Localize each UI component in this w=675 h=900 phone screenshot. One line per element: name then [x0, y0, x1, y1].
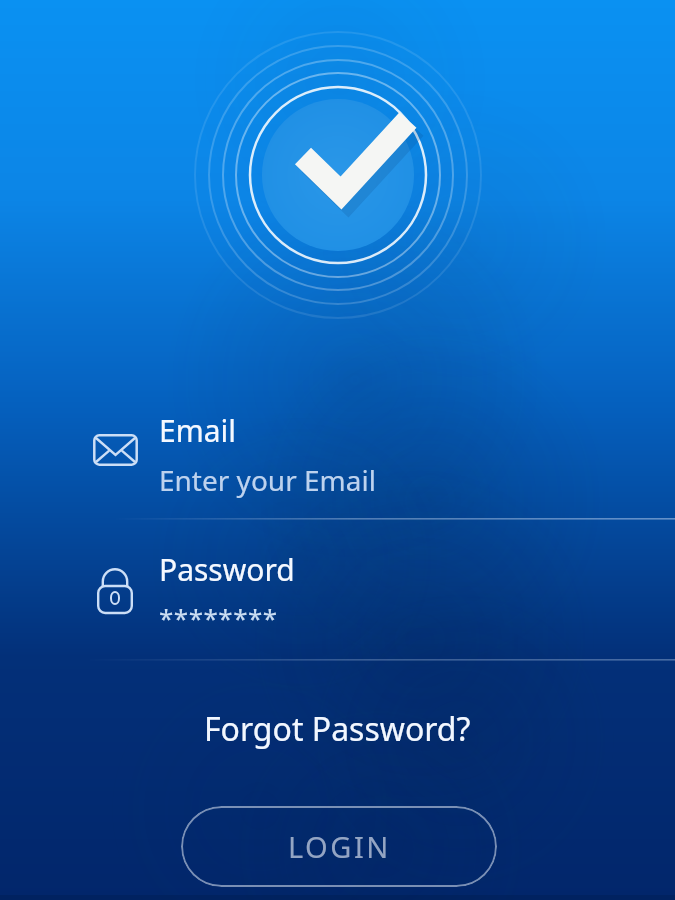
staticText: Email	[159, 410, 237, 451]
staticText: Password	[159, 549, 295, 590]
button[interactable]: LOGIN	[181, 806, 497, 887]
button[interactable]: Forgot Password?	[204, 707, 471, 751]
staticText: Enter your Email	[159, 461, 376, 499]
button[interactable]	[80, 548, 640, 640]
staticText: ********	[159, 600, 278, 635]
staticText: LOGIN	[288, 827, 391, 866]
button[interactable]	[80, 402, 640, 502]
